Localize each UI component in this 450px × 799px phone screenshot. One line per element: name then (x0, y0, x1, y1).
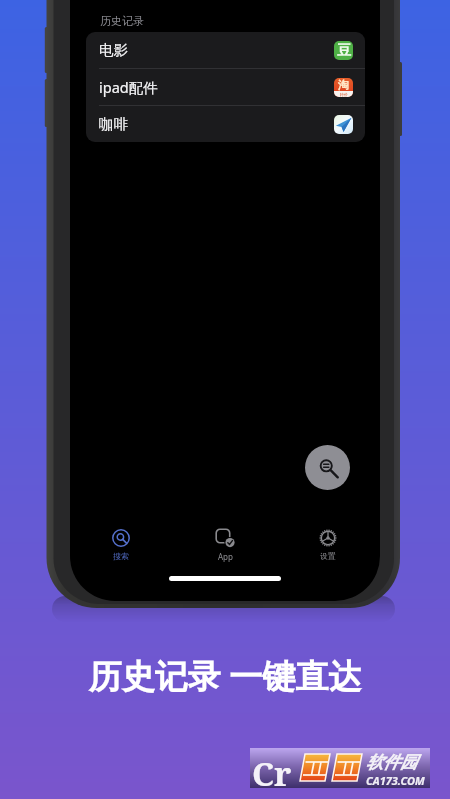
button[interactable]: 搜索 (90, 528, 152, 561)
staticText: ipad配件 (99, 77, 158, 97)
staticText: App (218, 551, 233, 562)
button[interactable]: ipad配件 (86, 69, 365, 105)
staticText: 电影 (99, 41, 128, 59)
button[interactable]: Search history (305, 445, 350, 490)
staticText: Cr (252, 751, 292, 791)
button[interactable]: App (194, 528, 256, 562)
staticText: 豆 (337, 42, 351, 60)
staticText: 设置 (320, 551, 336, 561)
button[interactable]: 电影 (86, 32, 365, 68)
staticText: 咖啡 (99, 115, 128, 133)
button[interactable]: 咖啡 (86, 106, 365, 142)
staticText: CA173.COM (366, 773, 425, 788)
staticText: 淘 (338, 78, 349, 92)
staticText: 软件园 (366, 752, 417, 773)
button[interactable]: 设置 (297, 528, 359, 561)
staticText: 搜索 (113, 551, 129, 561)
staticText: 历史记录 一键直达 (0, 653, 450, 698)
staticText: 历史记录 (100, 14, 144, 28)
staticText: 特价 (340, 92, 348, 97)
